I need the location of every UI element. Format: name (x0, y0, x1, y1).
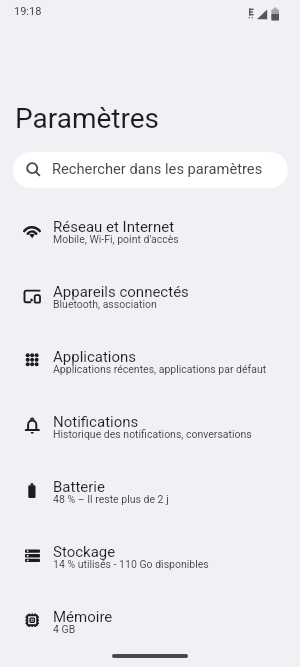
staticText: Batterie (53, 478, 105, 496)
staticText: Mobile, Wi-Fi, point d'accès (53, 233, 179, 245)
staticText: Paramètres (15, 102, 160, 135)
staticText: Notifications (53, 413, 139, 431)
staticText: Applications (53, 348, 137, 366)
staticText: 48 % – Il reste plus de 2 j (53, 493, 169, 505)
button[interactable]: Appareils connectés (0, 263, 300, 328)
button[interactable]: Mémoire (0, 588, 300, 653)
button[interactable]: Stockage (0, 523, 300, 588)
staticText: Rechercher dans les paramètres (52, 160, 263, 177)
staticText: 4 GB (53, 623, 76, 635)
button[interactable]: Réseau et Internet (0, 198, 300, 263)
staticText: Stockage (53, 543, 116, 561)
staticText: Mémoire (53, 608, 113, 626)
button[interactable]: Batterie (0, 458, 300, 523)
staticText: Applications récentes, applications par … (53, 363, 267, 375)
staticText: Réseau et Internet (53, 218, 175, 236)
button[interactable]: Rechercher dans les paramètres (13, 152, 288, 188)
button[interactable]: Applications (0, 328, 300, 393)
staticText: Bluetooth, association (53, 298, 157, 310)
button[interactable]: Notifications (0, 393, 300, 458)
staticText: Historique des notifications, conversati… (53, 428, 252, 440)
staticText: 14 % utilisés - 110 Go disponibles (53, 558, 209, 570)
staticText: Appareils connectés (53, 283, 189, 301)
staticText: 19:18 (14, 5, 42, 18)
